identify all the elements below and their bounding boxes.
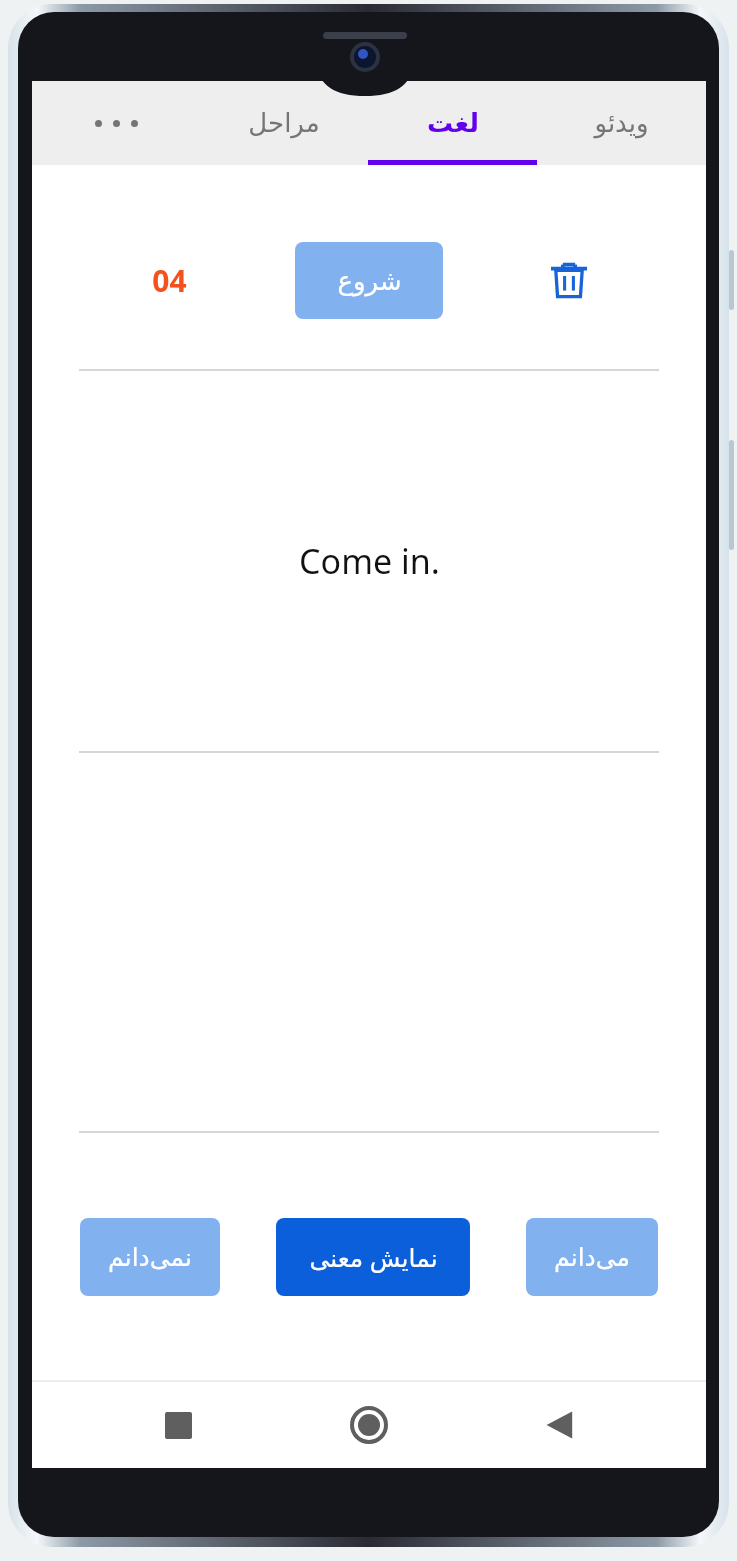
button[interactable]: شروع — [295, 242, 443, 319]
staticText: لغت — [427, 108, 479, 138]
staticText: مراحل — [248, 108, 320, 138]
staticText: ویدئو — [594, 108, 649, 138]
staticText: نمی‌دانم — [108, 1243, 192, 1272]
button[interactable]: می‌دانم — [526, 1218, 658, 1296]
staticText: نمایش معنی — [309, 1240, 438, 1274]
button[interactable]: Recent apps — [146, 1393, 210, 1457]
staticText: می‌دانم — [554, 1243, 630, 1272]
staticText: 04 — [152, 260, 187, 301]
button[interactable]: مراحل — [200, 81, 368, 165]
button[interactable]: Home — [337, 1393, 401, 1457]
button[interactable]: لغت — [368, 81, 537, 165]
staticText: Come in. — [299, 538, 440, 584]
button[interactable]: نمی‌دانم — [80, 1218, 220, 1296]
button[interactable] — [32, 81, 200, 165]
button[interactable]: Back — [528, 1393, 592, 1457]
staticText: شروع — [337, 266, 402, 296]
button[interactable]: Delete — [539, 250, 599, 310]
button[interactable]: ویدئو — [537, 81, 706, 165]
button[interactable]: نمایش معنی — [276, 1218, 470, 1296]
